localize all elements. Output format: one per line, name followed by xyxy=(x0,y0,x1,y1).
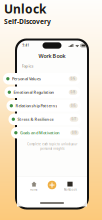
button[interactable]: Emotional Regulation xyxy=(4,86,80,98)
staticText: Workbook xyxy=(63,188,76,191)
button[interactable]: Personal Values xyxy=(3,73,80,84)
staticText: Unlock xyxy=(4,1,46,17)
button[interactable]: Add entry xyxy=(45,178,59,192)
staticText: 0/8 xyxy=(70,90,75,94)
staticText: Topics xyxy=(21,63,33,69)
button[interactable]: Relationship Patterns xyxy=(6,100,81,111)
staticText: 0/6 xyxy=(70,77,75,80)
staticText: Relationship Patterns xyxy=(15,103,57,108)
staticText: 0/7 xyxy=(71,117,76,121)
button[interactable]: Stress & Resilience xyxy=(8,113,81,125)
staticText: personal insights xyxy=(40,147,64,150)
staticText: 0/5 xyxy=(71,104,76,107)
staticText: Stress & Resilience xyxy=(17,117,53,122)
staticText: Emotional Regulation xyxy=(13,90,54,95)
staticText: 0/9 xyxy=(72,131,77,134)
staticText: Goals and Motivation xyxy=(20,130,60,135)
staticText: Self-Discovery xyxy=(4,17,51,26)
button[interactable]: Workbook xyxy=(63,181,76,191)
staticText: Work Book xyxy=(38,52,65,60)
staticText: Home xyxy=(30,188,38,191)
staticText: Personal Values xyxy=(12,76,41,81)
staticText: 9:41 xyxy=(22,44,29,47)
staticText: Complete each topic to unlock your xyxy=(27,143,77,146)
button[interactable]: Goals and Motivation xyxy=(11,127,82,138)
button[interactable]: Home xyxy=(30,181,38,191)
